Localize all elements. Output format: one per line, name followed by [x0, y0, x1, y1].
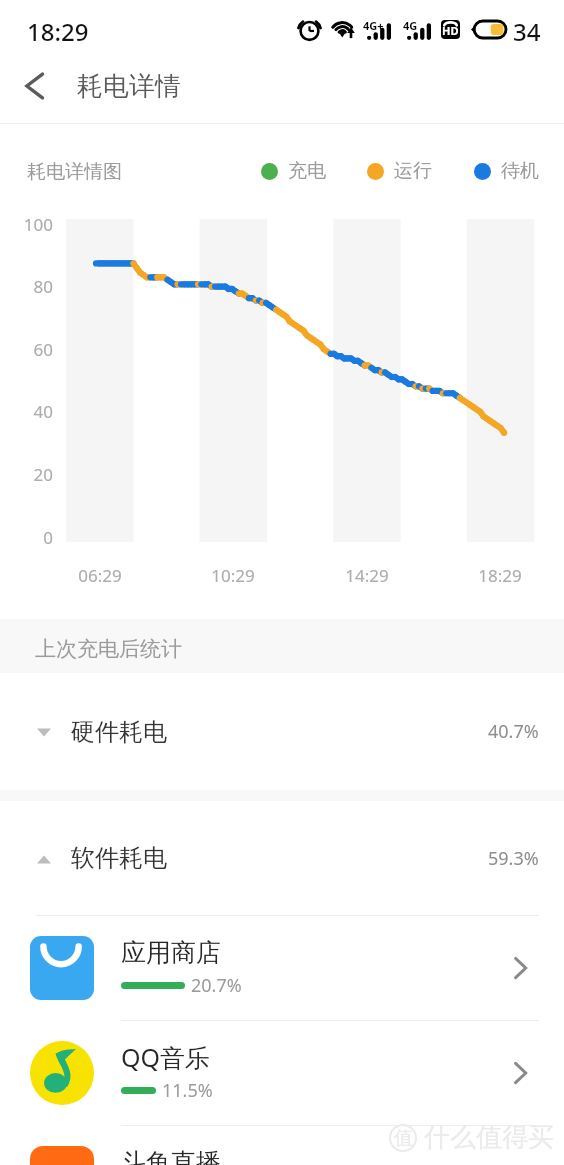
staticText: 上次充电后统计 — [35, 636, 182, 662]
staticText: 06:29 — [55, 564, 145, 587]
staticText: 耗电详情图 — [27, 160, 122, 184]
button[interactable]: 软件耗电 — [0, 801, 564, 915]
staticText: 20 — [0, 463, 53, 486]
staticText: 14:29 — [322, 564, 412, 587]
staticText: 10:29 — [188, 564, 278, 587]
staticText: 80 — [0, 275, 53, 298]
staticText: 耗电详情 — [77, 70, 181, 103]
staticText: 充电 — [288, 159, 326, 183]
staticText: 0 — [0, 526, 53, 549]
staticText: 斗鱼直播 — [121, 1147, 221, 1165]
staticText: 20.7% — [191, 973, 242, 998]
staticText: QQ音乐 — [121, 1040, 211, 1074]
staticText: 18:29 — [455, 564, 545, 587]
staticText: 60 — [0, 338, 53, 361]
staticText: 11.5% — [162, 1078, 213, 1103]
button[interactable]: QQ音乐 — [0, 1021, 564, 1125]
staticText: 值 — [394, 1126, 413, 1150]
staticText: 40.7% — [488, 719, 539, 744]
staticText: 59.3% — [488, 846, 539, 871]
staticText: 硬件耗电 — [71, 717, 167, 747]
staticText: 34 — [513, 15, 541, 48]
staticText: 运行 — [394, 159, 432, 183]
button[interactable]: 应用商店 — [0, 916, 564, 1020]
staticText: 18:29 — [27, 15, 89, 48]
button[interactable]: 斗鱼直播 — [0, 1126, 564, 1165]
button[interactable]: Back — [6, 58, 62, 114]
button[interactable]: 硬件耗电 — [0, 673, 564, 790]
staticText: 4G — [403, 18, 418, 33]
staticText: 40 — [0, 400, 53, 423]
staticText: 4G+ — [363, 18, 384, 33]
staticText: 应用商店 — [121, 937, 221, 968]
staticText: 100 — [0, 213, 53, 236]
staticText: 什么值得买 — [424, 1121, 554, 1154]
staticText: 软件耗电 — [71, 843, 167, 873]
staticText: 待机 — [501, 159, 539, 183]
staticText: HD — [442, 23, 459, 38]
